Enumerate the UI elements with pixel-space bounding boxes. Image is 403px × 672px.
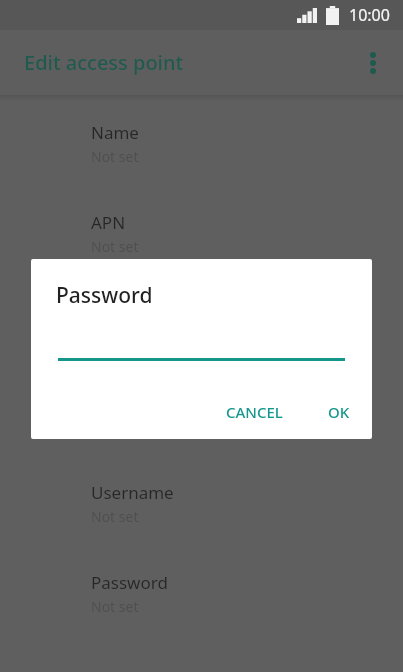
staticText: OK [328, 402, 350, 422]
staticText: Not set [91, 237, 139, 256]
staticText: Not set [91, 507, 139, 526]
button[interactable]: APN [0, 211, 403, 256]
staticText: Username [91, 481, 174, 504]
staticText: 10:00 [349, 4, 390, 26]
staticText: Password [91, 571, 168, 594]
staticText: Edit access point [24, 49, 184, 76]
button[interactable]: Name [0, 121, 403, 166]
staticText: APN [91, 211, 126, 234]
staticText: Name [91, 121, 139, 144]
staticText: Proxy [91, 301, 136, 324]
button[interactable]: Port [0, 391, 403, 436]
staticText: Password [56, 281, 153, 310]
button[interactable]: Password [0, 571, 403, 616]
staticText: CANCEL [226, 402, 283, 422]
button[interactable]: More options [349, 39, 397, 87]
button[interactable]: CANCEL [216, 393, 293, 431]
button[interactable]: Proxy [0, 301, 403, 346]
button[interactable]: Username [0, 481, 403, 526]
staticText: Not set [91, 597, 139, 616]
button[interactable]: OK [318, 393, 360, 431]
staticText: Not set [91, 147, 139, 166]
